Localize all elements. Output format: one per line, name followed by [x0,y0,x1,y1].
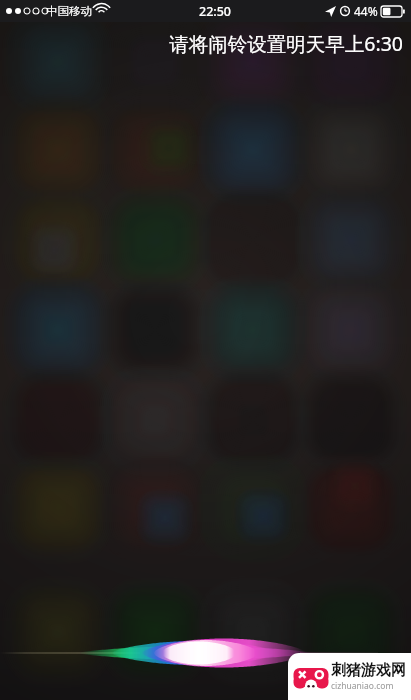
staticText: 中国移动 [46,4,92,18]
staticText: 请将闹铃设置明天早上6:30 [169,30,403,57]
staticText: cizhuaniao.com [331,680,394,692]
button[interactable]: 刺猪游戏网 cizhuaniao.com [288,653,411,700]
staticText: 44% [354,3,378,19]
staticText: 22:50 [199,3,232,20]
staticText: 刺猪游戏网 [331,661,406,680]
